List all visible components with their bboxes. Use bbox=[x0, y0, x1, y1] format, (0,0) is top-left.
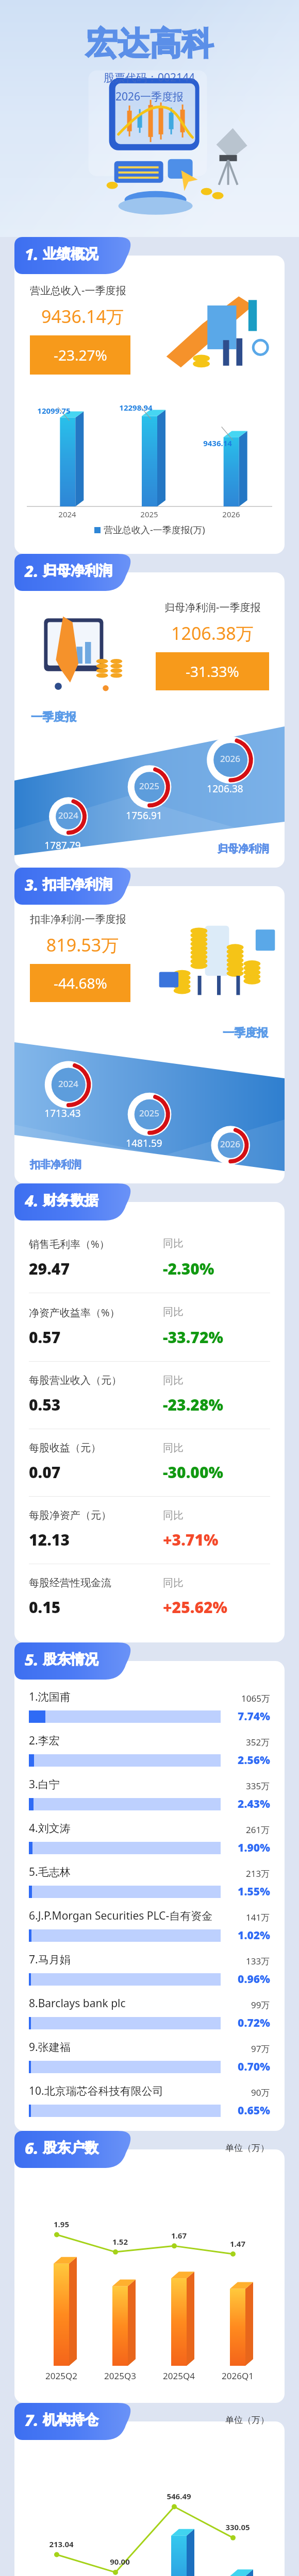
staticText: 同比 bbox=[163, 1509, 270, 1522]
button[interactable]: 3. bbox=[14, 868, 134, 905]
staticText: 同比 bbox=[163, 1374, 270, 1387]
button[interactable]: 每股经营性现金流 bbox=[14, 1564, 285, 1631]
staticText: 819.53万 bbox=[30, 933, 135, 957]
staticText: 扣非净利润-一季度报 bbox=[30, 912, 126, 926]
staticText: 单位（万） bbox=[225, 2415, 269, 2426]
staticText: 1206.38 bbox=[207, 782, 243, 795]
staticText: 2026一季度报 bbox=[115, 89, 184, 104]
staticText: 每股收益（元） bbox=[29, 1442, 163, 1454]
staticText: 2.43% bbox=[227, 1797, 270, 1811]
button[interactable]: 1. bbox=[14, 237, 134, 274]
staticText: 1756.91 bbox=[126, 809, 162, 822]
staticText: 5.毛志林 bbox=[29, 1865, 242, 1879]
staticText: 每股经营性现金流 bbox=[29, 1577, 163, 1589]
staticText: 1. bbox=[25, 244, 39, 265]
button[interactable]: 净资产收益率（%） bbox=[14, 1293, 285, 1361]
staticText: 归母净利润 bbox=[43, 562, 112, 580]
staticText: 1.95 bbox=[54, 2219, 69, 2229]
staticText: 12099.75 bbox=[37, 405, 71, 416]
staticText: 10.北京瑞芯谷科技有限公司 bbox=[29, 2083, 247, 2098]
staticText: 一季度报 bbox=[31, 710, 76, 724]
staticText: 销售毛利率（%） bbox=[29, 1237, 163, 1251]
staticText: 1.90% bbox=[227, 1840, 270, 1855]
button[interactable]: 5. bbox=[14, 1642, 134, 1680]
staticText: 每股净资产（元） bbox=[29, 1509, 163, 1522]
button[interactable]: 10.北京瑞芯谷科技有限公司 bbox=[14, 2079, 285, 2123]
staticText: 7. bbox=[25, 2410, 39, 2431]
staticText: 0.53 bbox=[29, 1394, 163, 1415]
staticText: 546.49 bbox=[167, 2491, 191, 2501]
staticText: 2.56% bbox=[227, 1753, 270, 1768]
staticText: 业绩概况 bbox=[43, 245, 98, 263]
staticText: -23.27% bbox=[54, 345, 107, 365]
staticText: 2024 bbox=[58, 509, 76, 519]
button[interactable]: 3.白宁 bbox=[14, 1772, 285, 1816]
staticText: 90.00 bbox=[110, 2556, 130, 2567]
button[interactable]: 2. bbox=[14, 554, 134, 591]
staticText: 2025 bbox=[139, 1107, 159, 1119]
staticText: 0.72% bbox=[227, 2015, 270, 2030]
staticText: 1206.38万 bbox=[171, 621, 254, 645]
staticText: 133万 bbox=[246, 1955, 270, 1967]
button[interactable]: 每股收益（元） bbox=[14, 1429, 285, 1496]
staticText: 同比 bbox=[163, 1442, 270, 1454]
staticText: 141万 bbox=[246, 1911, 270, 1923]
staticText: -33.72% bbox=[163, 1327, 270, 1348]
staticText: 8.Barclays bank plc bbox=[29, 1996, 247, 2011]
staticText: 2025 bbox=[139, 780, 159, 792]
button[interactable]: 4. bbox=[14, 1183, 134, 1221]
staticText: 0.07 bbox=[29, 1462, 163, 1483]
staticText: 6. bbox=[25, 2138, 39, 2159]
staticText: 352万 bbox=[246, 1736, 270, 1748]
button[interactable]: 1.沈国甫 bbox=[14, 1685, 285, 1728]
staticText: 6.J.P.Morgan Securities PLC-自有资金 bbox=[29, 1908, 242, 1923]
staticText: -44.68% bbox=[54, 973, 107, 993]
staticText: 99万 bbox=[251, 1999, 270, 2011]
staticText: 归母净利润 bbox=[218, 842, 269, 855]
staticText: 335万 bbox=[246, 1780, 270, 1792]
staticText: 同比 bbox=[163, 1577, 270, 1589]
staticText: 29.47 bbox=[29, 1258, 163, 1279]
staticText: 1713.43 bbox=[44, 1107, 81, 1120]
staticText: 2026 bbox=[222, 509, 240, 519]
button[interactable]: 4.刘文涛 bbox=[14, 1816, 285, 1860]
staticText: 9436.14 bbox=[203, 438, 232, 448]
button[interactable]: 2.李宏 bbox=[14, 1728, 285, 1772]
button[interactable]: 每股营业收入（元） bbox=[14, 1361, 285, 1429]
staticText: 2025 bbox=[140, 509, 158, 519]
staticText: 1.02% bbox=[227, 1928, 270, 1943]
staticText: 股东户数 bbox=[43, 2139, 98, 2157]
button[interactable]: 9.张建福 bbox=[14, 2035, 285, 2079]
staticText: 2025Q4 bbox=[163, 2370, 195, 2382]
staticText: 1065万 bbox=[241, 1692, 270, 1704]
staticText: 9.张建福 bbox=[29, 2040, 247, 2055]
staticText: 1.67 bbox=[171, 2230, 187, 2241]
staticText: 213万 bbox=[246, 1868, 270, 1879]
staticText: 2026 bbox=[220, 753, 240, 765]
button[interactable]: 6.J.P.Morgan Securities PLC-自有资金 bbox=[14, 1904, 285, 1947]
staticText: 单位（万） bbox=[225, 2143, 269, 2154]
staticText: 7.马月娟 bbox=[29, 1952, 242, 1967]
staticText: -31.33% bbox=[186, 662, 239, 681]
staticText: 财务数据 bbox=[43, 1192, 98, 1209]
staticText: 213.04 bbox=[49, 2539, 74, 2549]
staticText: 股东情况 bbox=[43, 1651, 98, 1668]
button[interactable]: 7.马月娟 bbox=[14, 1947, 285, 1991]
staticText: 5. bbox=[25, 1649, 39, 1670]
button[interactable]: 8.Barclays bank plc bbox=[14, 1991, 285, 2035]
staticText: 3. bbox=[25, 874, 39, 895]
button[interactable]: 7. bbox=[14, 2403, 134, 2440]
staticText: 营业总收入-一季度报 bbox=[30, 283, 126, 297]
staticText: 2026Q1 bbox=[222, 2370, 254, 2382]
staticText: 同比 bbox=[163, 1306, 270, 1318]
staticText: 261万 bbox=[246, 1824, 270, 1836]
button[interactable]: 6. bbox=[14, 2131, 134, 2168]
staticText: 0.96% bbox=[227, 1972, 270, 1987]
button[interactable]: 5.毛志林 bbox=[14, 1860, 285, 1904]
button[interactable]: 每股净资产（元） bbox=[14, 1496, 285, 1564]
button[interactable]: 销售毛利率（%） bbox=[14, 1225, 285, 1293]
staticText: 90万 bbox=[251, 2087, 270, 2098]
staticText: 股票代码：002144 bbox=[104, 70, 195, 85]
staticText: -23.28% bbox=[163, 1394, 270, 1415]
